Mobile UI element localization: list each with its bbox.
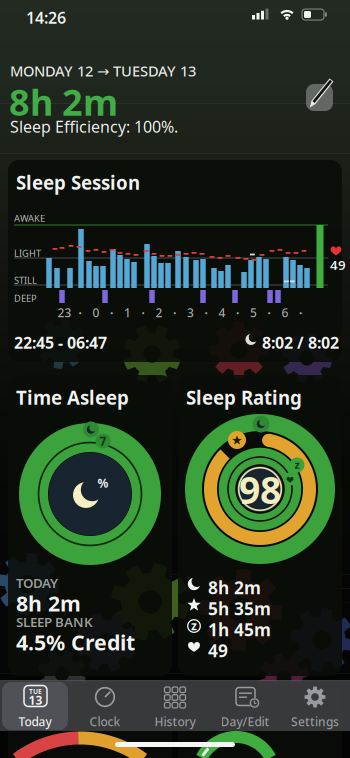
staticText: TUE: [29, 687, 42, 696]
staticText: DEEP: [14, 292, 37, 304]
staticText: Sleep Session: [16, 170, 140, 195]
staticText: MONDAY 12 → TUESDAY 13: [10, 61, 196, 80]
staticText: 5h 35m: [208, 597, 271, 620]
staticText: 7: [99, 433, 106, 449]
staticText: ·: [267, 304, 270, 320]
staticText: ·: [299, 304, 302, 320]
staticText: 3: [187, 304, 194, 320]
staticText: SLEEP BANK: [16, 613, 93, 631]
staticText: 6: [281, 304, 288, 320]
staticText: %: [97, 475, 108, 491]
staticText: 49: [330, 256, 346, 274]
staticText: 49: [208, 639, 228, 662]
staticText: Settings: [291, 713, 339, 729]
button[interactable]: History: [140, 682, 210, 730]
staticText: Sleep Efficiency: 100%.: [10, 116, 178, 137]
staticText: 5: [250, 304, 257, 320]
staticText: 8h 2m: [9, 78, 118, 126]
staticText: ·: [173, 304, 176, 320]
button[interactable]: Settings: [280, 682, 350, 730]
staticText: TODAY: [16, 574, 58, 592]
staticText: ·: [204, 304, 207, 320]
staticText: 98: [239, 465, 281, 514]
staticText: 8h 2m: [16, 589, 81, 617]
staticText: 23: [57, 304, 71, 320]
staticText: 0: [92, 304, 99, 320]
staticText: 8:02 / 8:02: [262, 332, 339, 353]
staticText: z: [191, 617, 197, 633]
staticText: STILL: [14, 274, 37, 286]
staticText: 2: [155, 304, 162, 320]
staticText: 4: [218, 304, 225, 320]
button[interactable]: Day/Edit: [210, 682, 280, 730]
staticText: Clock: [89, 713, 120, 729]
staticText: ·: [110, 304, 113, 320]
staticText: 1: [124, 304, 131, 320]
staticText: 14:26: [26, 7, 66, 28]
staticText: AWAKE: [14, 212, 45, 224]
staticText: ·: [236, 304, 239, 320]
staticText: Day/Edit: [220, 713, 269, 729]
staticText: History: [154, 713, 195, 729]
button[interactable]: Clock: [70, 682, 140, 730]
button[interactable]: Today: [2, 682, 68, 730]
staticText: 4.5% Credit: [16, 628, 135, 656]
staticText: 22:45 - 06:47: [14, 332, 107, 353]
staticText: Sleep Rating: [186, 385, 302, 410]
staticText: Time Asleep: [16, 385, 129, 410]
staticText: z: [294, 457, 299, 472]
staticText: 13: [28, 692, 42, 708]
staticText: 1h 45m: [208, 618, 271, 641]
staticText: 8h 2m: [208, 576, 261, 599]
staticText: LIGHT: [14, 247, 41, 259]
staticText: ·: [78, 304, 81, 320]
staticText: Today: [18, 713, 51, 729]
staticText: ·: [141, 304, 144, 320]
button[interactable]: Edit sleep session: [306, 79, 336, 112]
